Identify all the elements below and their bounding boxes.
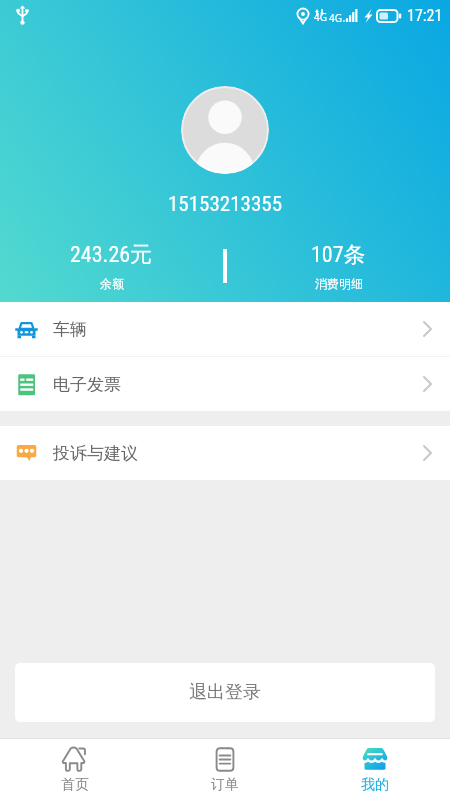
button[interactable]: 个人头像 — [181, 86, 269, 174]
button[interactable]: 107条 — [227, 241, 450, 291]
staticText: 4G — [329, 11, 342, 25]
staticText: 首页 — [61, 776, 89, 794]
button[interactable]: 订单 — [150, 739, 300, 800]
button[interactable]: 电子发票 — [0, 357, 450, 411]
staticText: 107条 — [311, 241, 366, 269]
staticText: 17:21 — [407, 6, 443, 25]
staticText: 消费明细 — [315, 276, 363, 291]
staticText: 243.26元 — [70, 241, 153, 269]
button[interactable]: 投诉与建议 — [0, 426, 450, 480]
button[interactable]: 首页 — [0, 739, 150, 800]
staticText: 余额 — [100, 276, 124, 291]
staticText: 电子发票 — [53, 374, 121, 395]
button[interactable]: 243.26元 — [0, 241, 223, 291]
button[interactable]: 车辆 — [0, 302, 450, 356]
staticText: 我的 — [361, 776, 389, 794]
staticText: 退出登录 — [189, 681, 261, 704]
button[interactable]: 我的 — [300, 739, 450, 800]
staticText: 车辆 — [53, 319, 87, 340]
staticText: 订单 — [211, 776, 239, 794]
staticText: 投诉与建议 — [53, 443, 138, 464]
staticText: 4G — [314, 10, 327, 24]
staticText: 15153213355 — [168, 192, 283, 217]
button[interactable]: 退出登录 — [15, 663, 435, 722]
